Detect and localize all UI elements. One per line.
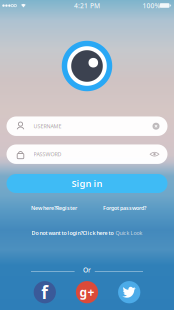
- button[interactable]: Sign in with Twitter: [118, 281, 140, 303]
- staticText: Do not want to login?Click here to: [31, 229, 113, 237]
- staticText: New here?Register: [31, 204, 77, 212]
- button[interactable]: Sign in with Facebook: [34, 281, 56, 303]
- button[interactable]: Sign in: [6, 174, 167, 193]
- staticText: g+: [79, 284, 94, 300]
- button[interactable]: USERNAME: [6, 116, 167, 136]
- button[interactable]: Sign in with Google Plus: [76, 281, 98, 303]
- staticText: Forgot password?: [103, 204, 146, 212]
- staticText: Or: [83, 266, 91, 274]
- staticText: USERNAME: [33, 123, 61, 130]
- staticText: Quick Look: [115, 229, 142, 237]
- button[interactable]: Do not want to login?Click here to: [31, 229, 142, 237]
- button[interactable]: PASSWORD: [6, 144, 167, 164]
- staticText: 4:21 PM: [74, 1, 100, 10]
- button[interactable]: Forgot password?: [103, 204, 146, 212]
- button[interactable]: New here?Register: [31, 204, 77, 212]
- staticText: PASSWORD: [33, 151, 61, 158]
- staticText: Sign in: [71, 177, 102, 190]
- staticText: 100%: [143, 1, 161, 10]
- staticText: f: [41, 281, 48, 304]
